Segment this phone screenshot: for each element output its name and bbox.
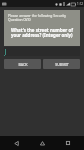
- staticText: SUBMIT: [55, 62, 69, 67]
- button[interactable]: SUBMIT: [43, 59, 80, 69]
- staticText: 1:12: [77, 2, 83, 6]
- staticText: BACK: [18, 62, 28, 67]
- staticText: Please answer the following Security Que…: [8, 13, 76, 22]
- button[interactable]: Home: [32, 136, 52, 150]
- staticText: What's the street number of your address…: [11, 27, 73, 39]
- button[interactable]: Recent apps: [58, 136, 78, 150]
- button[interactable]: Back: [6, 136, 26, 150]
- button[interactable]: [4, 47, 80, 56]
- button[interactable]: BACK: [4, 59, 41, 69]
